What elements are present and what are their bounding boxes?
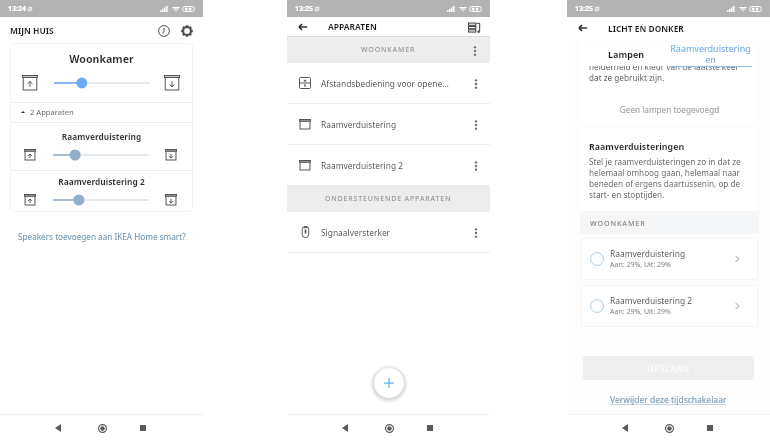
button[interactable]: Close blind — [165, 149, 177, 161]
button[interactable]: Home — [92, 418, 112, 438]
button[interactable]: More options — [467, 157, 484, 174]
staticText: helderheid en kleur van de laatste keer — [589, 61, 739, 72]
staticText: OPSLAAN — [647, 363, 690, 374]
button[interactable]: Back — [295, 19, 311, 35]
button[interactable]: Signaalversterker — [287, 212, 490, 252]
staticText: Raamverduisteringen — [589, 141, 685, 153]
button[interactable]: More options — [467, 75, 484, 92]
button[interactable]: Home — [379, 418, 399, 438]
staticText: ONDERSTEUNENDE APPARATEN — [325, 194, 452, 204]
button[interactable]: Back — [575, 20, 591, 36]
staticText: Woonkamer — [10, 52, 193, 66]
button[interactable]: Schedules — [155, 22, 172, 39]
staticText: APPARATEN — [328, 21, 377, 32]
button[interactable]: Open blind — [24, 149, 36, 161]
button[interactable]: 2 Apparaten — [10, 103, 193, 122]
button[interactable]: Raamverduisteringen — [669, 42, 752, 66]
staticText: Raamverduistering — [610, 248, 686, 259]
button[interactable]: Lampen — [583, 42, 669, 66]
staticText: WOONKAMER — [361, 45, 416, 55]
staticText: Raamverduistering 2 — [10, 176, 193, 187]
button[interactable]: Open blind — [22, 75, 38, 91]
button[interactable]: Add device — [374, 368, 404, 398]
button[interactable]: Raamverduistering — [287, 104, 490, 144]
staticText: Raamverduisteringen — [669, 42, 752, 65]
button[interactable]: Recents — [133, 418, 153, 438]
staticText: Raamverduistering — [10, 131, 193, 142]
staticText: Signaalversterker — [321, 227, 458, 238]
staticText: dat ze gebruikt zijn. — [589, 72, 665, 83]
button[interactable]: Recents — [420, 418, 440, 438]
button[interactable]: Raamverduistering 2 — [287, 145, 490, 185]
button[interactable]: More options — [467, 224, 484, 241]
staticText: Raamverduistering 2 — [321, 160, 458, 171]
staticText: 13:24 — [8, 4, 26, 14]
staticText: MIJN HUIS — [10, 25, 54, 36]
button[interactable]: Close blind — [164, 75, 180, 91]
button[interactable]: Verwijder deze tijdschakelaar — [567, 392, 770, 408]
button[interactable]: Home — [659, 418, 679, 438]
staticText: Aan: 29%, Uit: 29% — [610, 260, 671, 270]
button[interactable]: Open blind — [24, 194, 36, 206]
staticText: Raamverduistering — [321, 119, 458, 130]
staticText: Lampen — [608, 48, 645, 60]
button[interactable]: Raamverduistering — [581, 238, 758, 280]
button[interactable]: More options — [467, 116, 484, 133]
staticText: Aan: 29%, Uit: 29% — [610, 307, 671, 317]
staticText: Verwijder deze tijdschakelaar — [610, 394, 727, 406]
staticText: Afstandsbediening voor opene… — [321, 78, 458, 89]
button[interactable]: Recents — [700, 418, 720, 438]
staticText: WOONKAMER — [590, 218, 646, 228]
staticText: Stel je raamverduisteringen zo in dat ze… — [589, 156, 752, 200]
staticText: LICHT EN DONKER — [608, 23, 684, 34]
button[interactable]: Reorder devices — [466, 19, 482, 35]
staticText: Raamverduistering 2 — [610, 295, 693, 306]
button[interactable]: Back — [335, 418, 355, 438]
staticText: 13:25 — [295, 4, 313, 14]
button[interactable]: Close blind — [165, 194, 177, 206]
staticText: Speakers toevoegen aan IKEA Home smart? — [18, 231, 186, 242]
button[interactable]: Settings — [178, 22, 195, 39]
button[interactable]: Back — [48, 418, 68, 438]
button[interactable]: More options — [466, 42, 483, 59]
button[interactable]: Speakers toevoegen aan IKEA Home smart? — [0, 231, 203, 242]
button[interactable]: Raamverduistering 2 — [581, 285, 758, 327]
button[interactable]: Afstandsbediening voor opene… — [287, 63, 490, 103]
staticText: 13:25 — [575, 4, 593, 14]
staticText: 2 Apparaten — [30, 107, 74, 117]
staticText: Geen lampen toegevoegd — [581, 104, 758, 115]
button[interactable]: Back — [615, 418, 635, 438]
